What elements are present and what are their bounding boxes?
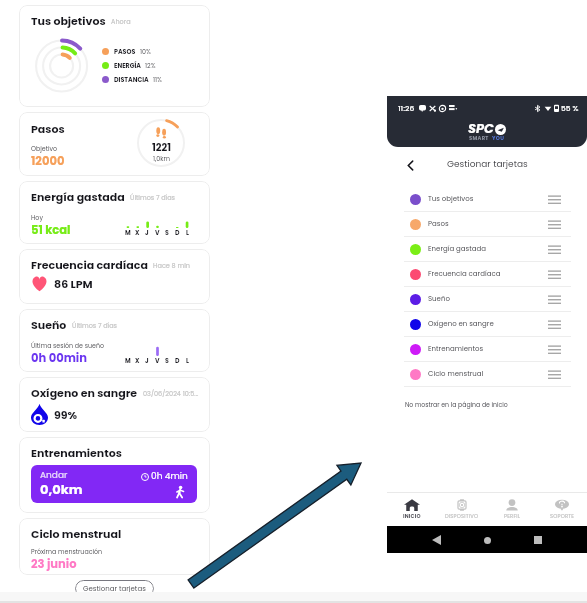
button[interactable]: Tus objetivos xyxy=(410,187,561,211)
button[interactable]: Pasos xyxy=(19,112,210,176)
button[interactable]: Sueño xyxy=(19,309,210,372)
staticText: Pasos xyxy=(428,219,449,229)
staticText: 1,0km xyxy=(153,154,170,163)
staticText: PERFIL xyxy=(504,513,521,520)
staticText: 11% xyxy=(153,75,162,84)
staticText: M xyxy=(125,356,131,365)
staticText: J xyxy=(145,228,149,237)
staticText: 86 LPM xyxy=(54,276,93,291)
button[interactable]: Frecuencia cardíaca xyxy=(410,262,561,286)
staticText: 03/06/2024 10:5... xyxy=(143,389,199,398)
button[interactable]: INICIO xyxy=(387,499,437,520)
staticText: Oxígeno en sangre xyxy=(31,385,138,400)
staticText: S xyxy=(165,228,169,237)
button[interactable]: Oxígeno en sangre xyxy=(19,377,210,432)
staticText: SOPORTE xyxy=(550,513,575,520)
button[interactable]: Gestionar tarjetas xyxy=(75,580,154,597)
staticText: SPC xyxy=(468,120,494,138)
staticText: 0h 00min xyxy=(31,350,88,366)
button[interactable]: Ciclo menstrual xyxy=(19,518,210,575)
staticText: ENERGÍA xyxy=(114,61,141,70)
staticText: Energía gastada xyxy=(31,189,125,204)
button[interactable]: Recents xyxy=(528,530,548,550)
staticText: Tus objetivos xyxy=(31,13,106,28)
staticText: Ciclo menstrual xyxy=(31,526,122,541)
staticText: 0,0km xyxy=(40,480,83,498)
button[interactable]: Back xyxy=(426,530,446,550)
staticText: M xyxy=(125,228,131,237)
staticText: 51 kcal xyxy=(31,222,71,238)
staticText: Tus objetivos xyxy=(428,194,474,204)
staticText: Gestionar tarjetas xyxy=(83,584,146,594)
staticText: INICIO xyxy=(403,513,421,520)
staticText: V xyxy=(155,356,160,365)
button[interactable]: Energía gastada xyxy=(410,237,561,261)
staticText: 23 junio xyxy=(31,556,77,572)
staticText: Próxima menstruación xyxy=(31,547,103,556)
button[interactable]: Entrenamientos xyxy=(19,437,210,513)
staticText: Sueño xyxy=(428,294,450,304)
staticText: PASOS xyxy=(114,47,136,56)
staticText: 1221 xyxy=(152,140,171,154)
staticText: SMART xyxy=(469,135,489,142)
button[interactable]: DISPOSITIVO xyxy=(437,499,487,520)
staticText: Andar xyxy=(40,469,68,482)
staticText: Hoy xyxy=(31,213,43,222)
staticText: 55 % xyxy=(561,103,579,113)
staticText: Gestionar tarjetas xyxy=(447,158,528,171)
staticText: Sueño xyxy=(31,317,67,332)
staticText: Ahora xyxy=(111,17,131,26)
staticText: Entrenamientos xyxy=(428,344,484,354)
staticText: Frecuencia cardíaca xyxy=(428,269,501,279)
button[interactable]: Tus objetivos xyxy=(19,5,210,107)
staticText: X xyxy=(135,356,140,365)
staticText: 99% xyxy=(54,407,78,422)
button[interactable]: Pasos xyxy=(410,212,561,236)
button[interactable]: Frecuencia cardíaca xyxy=(19,249,210,304)
staticText: DISPOSITIVO xyxy=(445,513,479,520)
staticText: 11:26 xyxy=(398,103,415,113)
staticText: Hace 8 min xyxy=(153,261,190,270)
staticText: Última sesión de sueño xyxy=(31,341,104,350)
button[interactable]: SOPORTE xyxy=(537,499,587,520)
button[interactable]: Andar xyxy=(31,465,197,503)
button[interactable]: Sueño xyxy=(410,287,561,311)
staticText: No mostrar en la página de inicio xyxy=(405,400,508,409)
staticText: Pasos xyxy=(31,121,65,136)
staticText: J xyxy=(145,356,149,365)
staticText: D xyxy=(175,228,180,237)
button[interactable]: Entrenamientos xyxy=(410,337,561,361)
staticText: DISTANCIA xyxy=(114,75,149,84)
staticText: Ciclo menstrual xyxy=(428,369,484,379)
staticText: Objetivo xyxy=(31,144,58,153)
button[interactable]: Back xyxy=(401,156,419,174)
button[interactable]: Home xyxy=(477,530,497,550)
button[interactable]: Ciclo menstrual xyxy=(410,362,561,386)
staticText: Frecuencia cardíaca xyxy=(31,257,148,272)
staticText: D xyxy=(175,356,180,365)
staticText: Últimos 7 días xyxy=(72,321,117,330)
button[interactable]: PERFIL xyxy=(487,499,537,520)
staticText: Energía gastada xyxy=(428,244,486,254)
staticText: S xyxy=(165,356,169,365)
staticText: Oxígeno en sangre xyxy=(428,319,494,329)
button[interactable]: Energía gastada xyxy=(19,181,210,244)
staticText: X xyxy=(135,228,140,237)
staticText: 12000 xyxy=(31,153,65,169)
staticText: 12% xyxy=(145,61,156,70)
staticText: L xyxy=(186,356,189,365)
staticText: V xyxy=(155,228,160,237)
button[interactable]: Oxígeno en sangre xyxy=(410,312,561,336)
staticText: YOU xyxy=(492,135,505,142)
staticText: 0h 4min xyxy=(151,470,188,483)
staticText: L xyxy=(186,228,189,237)
staticText: 10% xyxy=(140,47,151,56)
staticText: Últimos 7 días xyxy=(130,193,175,202)
staticText: Entrenamientos xyxy=(31,445,122,460)
